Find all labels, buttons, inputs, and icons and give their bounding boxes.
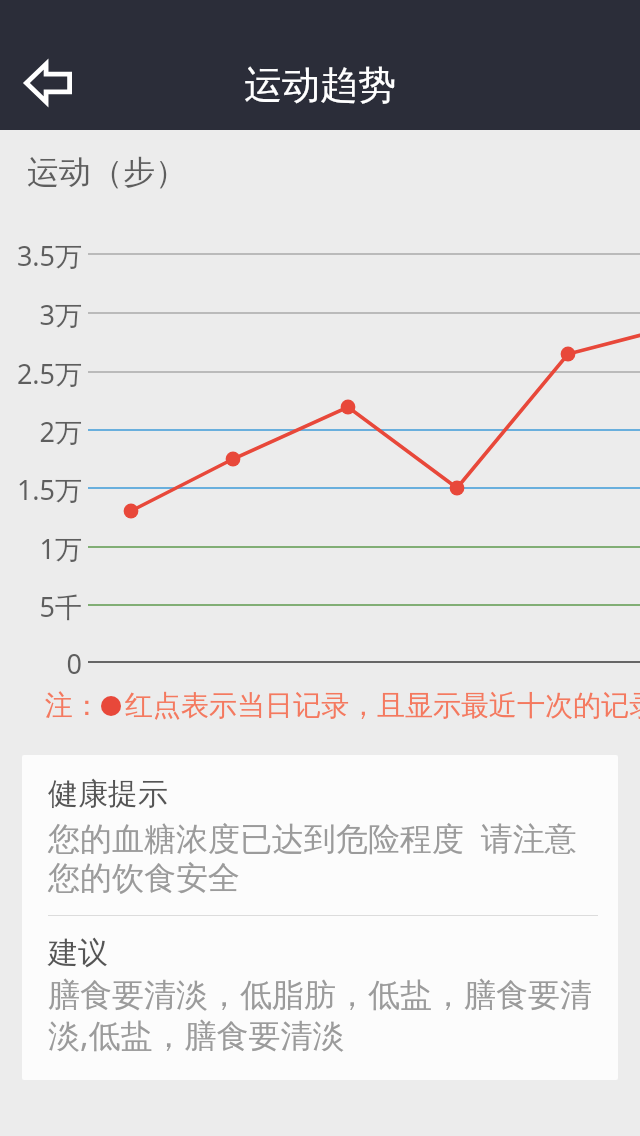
staticText: 3万 bbox=[8, 296, 82, 333]
staticText: 1万 bbox=[8, 530, 82, 567]
staticText: 5千 bbox=[8, 588, 82, 625]
button[interactable]: 健康提示 bbox=[22, 755, 618, 1080]
staticText: 建议 bbox=[48, 934, 108, 972]
staticText: 3.5万 bbox=[8, 237, 82, 274]
button[interactable]: Back bbox=[14, 50, 82, 116]
staticText: 1.5万 bbox=[8, 471, 82, 508]
staticText: 健康提示 bbox=[48, 775, 168, 813]
staticText: 注： bbox=[45, 688, 101, 723]
staticText: 2万 bbox=[8, 413, 82, 450]
staticText: 运动（步） bbox=[27, 152, 187, 192]
staticText: 0 bbox=[8, 645, 82, 682]
staticText: 运动趋势 bbox=[244, 61, 396, 109]
staticText: 2.5万 bbox=[8, 355, 82, 392]
staticText: 您的血糖浓度已达到危险程度 请注意您的饮食安全 bbox=[48, 816, 598, 899]
staticText: 膳食要清淡，低脂肪，低盐，膳食要清淡,低盐，膳食要清淡 bbox=[48, 975, 598, 1056]
staticText: 红点表示当日记录，且显示最近十次的记录 bbox=[125, 688, 640, 723]
